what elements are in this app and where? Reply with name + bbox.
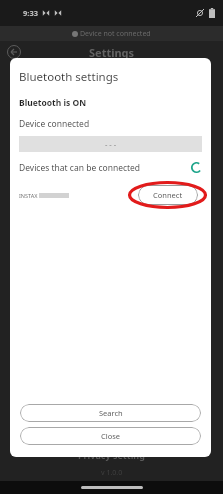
staticText: Device connected: [19, 118, 90, 130]
staticText: Search: [99, 408, 123, 418]
staticText: 9:33: [23, 8, 38, 18]
staticText: Devices that can be connected: [19, 162, 141, 174]
staticText: Bluetooth settings: [19, 69, 119, 85]
button[interactable]: Search: [20, 404, 201, 422]
staticText: Device not connected: [80, 29, 151, 39]
staticText: INSTAX: [19, 192, 38, 199]
staticText: Close: [101, 431, 121, 441]
button[interactable]: Connect: [138, 185, 198, 205]
staticText: Bluetooth is ON: [19, 97, 87, 109]
staticText: Privacy setting: [78, 449, 145, 461]
staticText: v 1.0.0: [101, 468, 123, 478]
button[interactable]: Close: [20, 427, 201, 445]
staticText: - - -: [105, 139, 117, 149]
staticText: Settings: [89, 45, 135, 60]
other: Searching: [190, 161, 203, 174]
button[interactable]: Back: [5, 43, 23, 61]
staticText: Connect: [153, 190, 183, 200]
